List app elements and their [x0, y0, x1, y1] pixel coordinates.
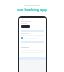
staticText: our banking app [17, 7, 47, 12]
button[interactable] [21, 25, 30, 28]
staticText: the easiest way [24, 4, 40, 7]
